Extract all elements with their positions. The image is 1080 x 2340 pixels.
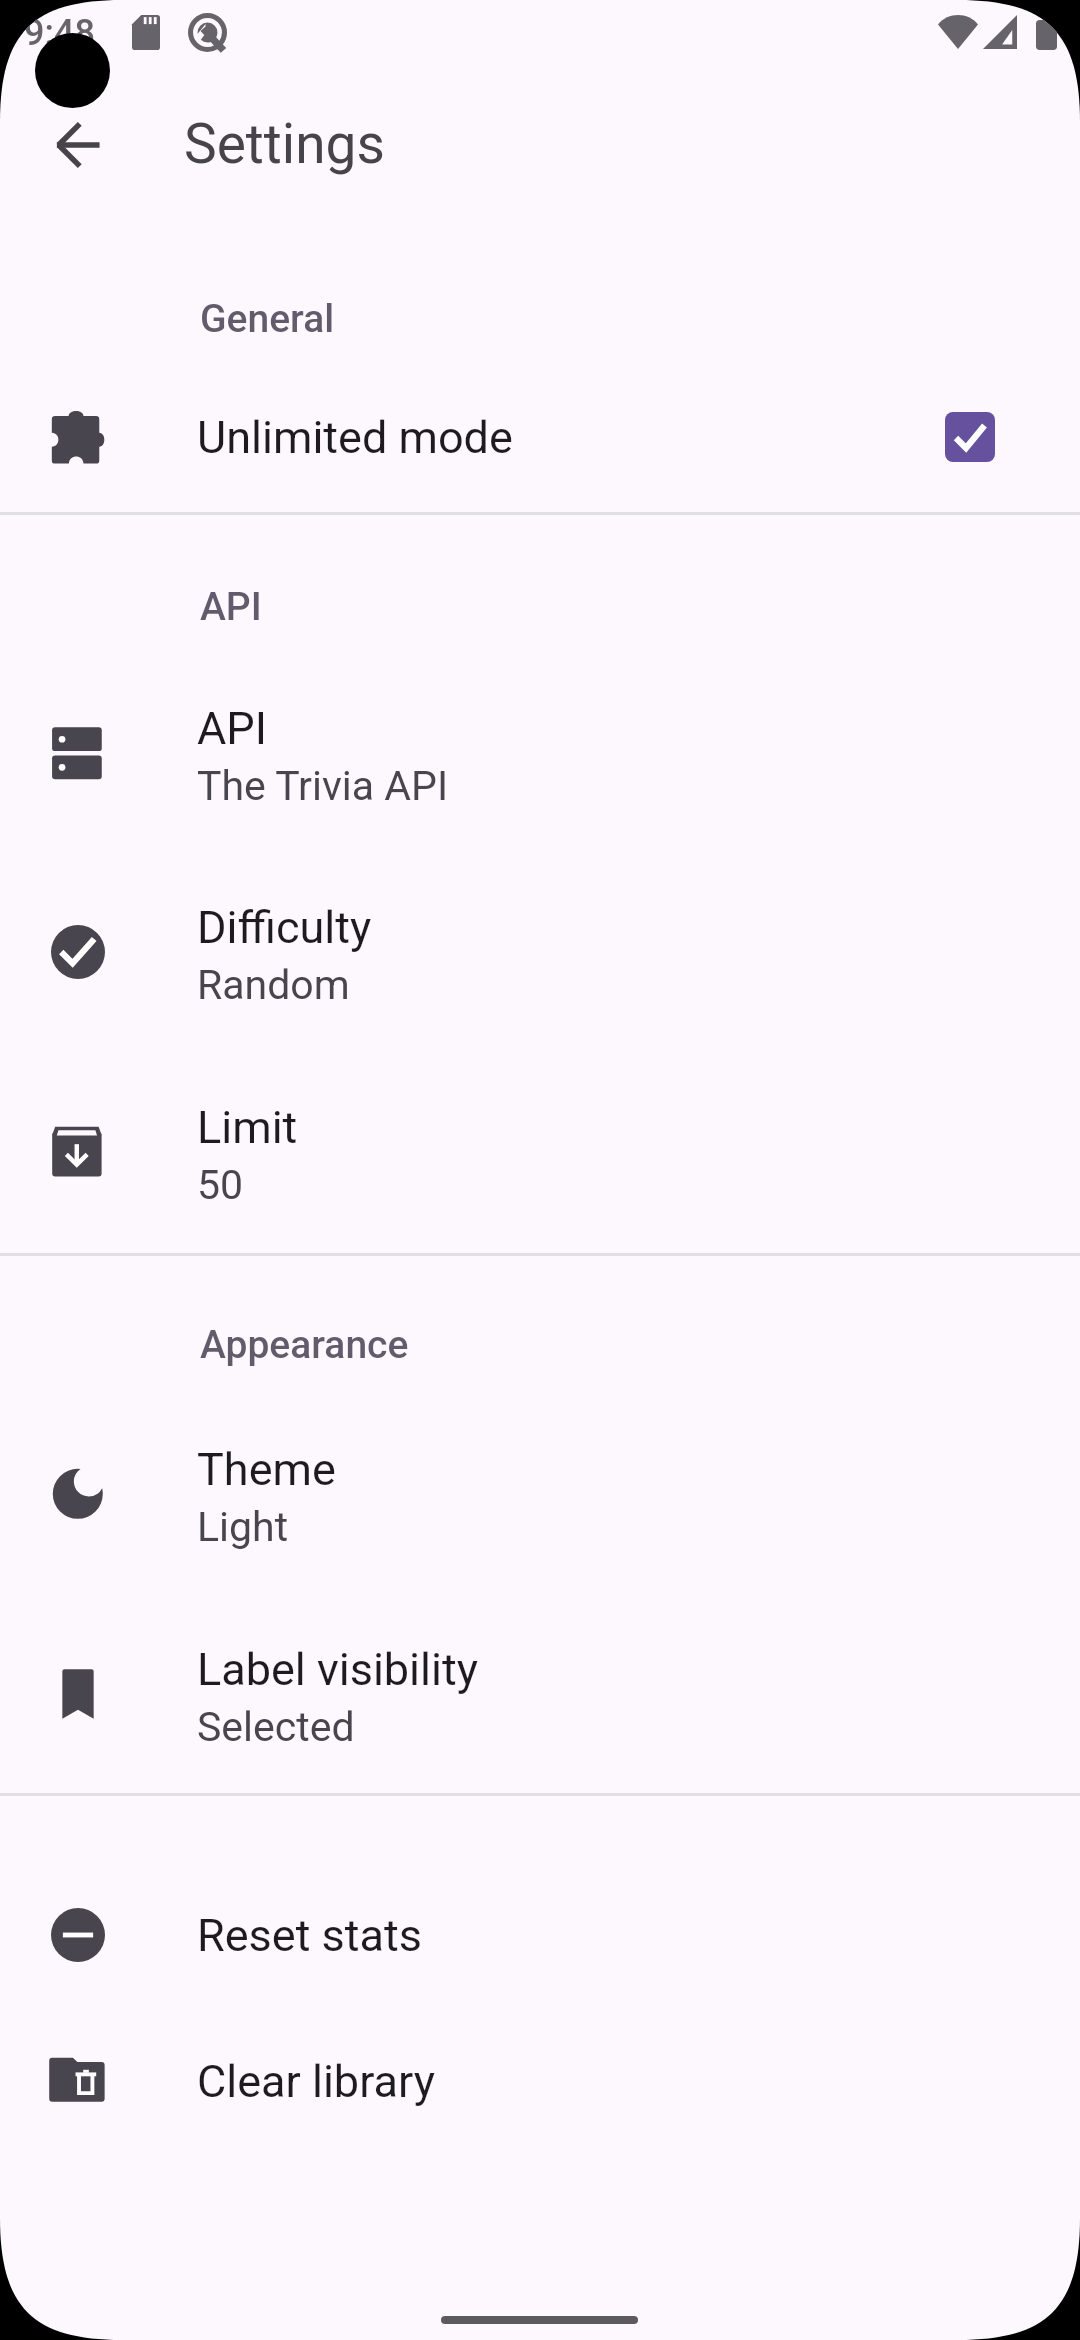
staticText: Selected: [197, 1703, 355, 1751]
button[interactable]: Back: [26, 93, 130, 197]
staticText: Appearance: [200, 1322, 409, 1368]
staticText: API: [200, 584, 262, 630]
staticText: Theme: [197, 1443, 336, 1496]
staticText: Clear library: [197, 2055, 435, 2108]
staticText: General: [200, 296, 335, 342]
button[interactable]: Unlimited mode: [0, 364, 1080, 510]
staticText: Difficulty: [197, 901, 372, 954]
button[interactable]: Clear library: [0, 2008, 1080, 2154]
button[interactable]: Label visibility: [0, 1597, 1080, 1797]
button[interactable]: Difficulty: [0, 855, 1080, 1055]
staticText: 9:48: [24, 12, 95, 54]
staticText: Limit: [197, 1101, 298, 1154]
staticText: Random: [197, 961, 350, 1009]
button[interactable]: Theme: [0, 1397, 1080, 1597]
button[interactable]: Limit: [0, 1055, 1080, 1255]
staticText: Settings: [184, 112, 385, 176]
staticText: Label visibility: [197, 1643, 478, 1696]
staticText: Reset stats: [197, 1909, 422, 1962]
staticText: 50: [197, 1161, 244, 1209]
staticText: API: [197, 702, 267, 755]
staticText: Unlimited mode: [197, 411, 513, 464]
staticText: The Trivia API: [197, 762, 449, 810]
button[interactable]: Reset stats: [0, 1862, 1080, 2008]
button[interactable]: API: [0, 656, 1080, 856]
staticText: Light: [197, 1503, 289, 1551]
